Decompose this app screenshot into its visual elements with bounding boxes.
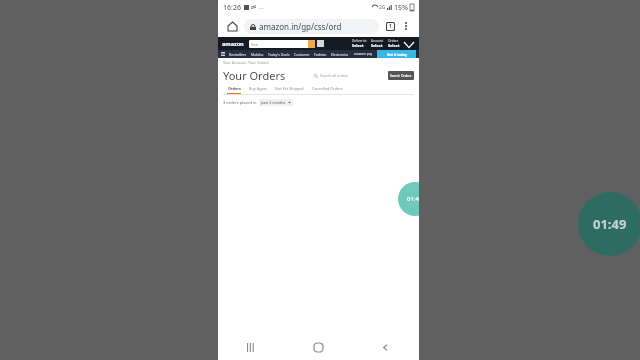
button[interactable]: Mobiles <box>249 52 266 57</box>
staticText: Mobiles <box>251 52 264 57</box>
staticText: Search Orders <box>390 74 412 78</box>
staticText: Not Yet Shipped <box>275 86 304 91</box>
button[interactable]: Customer <box>292 52 312 57</box>
staticText: Orders <box>228 86 241 91</box>
staticText: amazon pay <box>354 52 373 56</box>
button[interactable]: amazon pay <box>351 51 375 57</box>
staticText: Select <box>371 43 383 48</box>
staticText: Your Orders <box>223 68 286 83</box>
staticText: ··· <box>259 4 264 12</box>
staticText: 3 orders placed in <box>223 100 257 105</box>
button[interactable]: Search all orders <box>312 71 386 80</box>
button[interactable]: Buy Again <box>245 86 271 94</box>
button[interactable]: Back <box>352 334 419 360</box>
staticText: Bestsellers <box>229 52 247 57</box>
button[interactable]: Tabs <box>383 19 397 33</box>
staticText: Buy Again <box>249 86 267 91</box>
staticText: Cancelled Orders <box>312 86 343 91</box>
staticText: amazon <box>222 40 244 47</box>
staticText: Get it today <box>387 52 407 57</box>
button[interactable]: Account <box>369 39 386 48</box>
button[interactable]: past 3 months <box>259 99 293 106</box>
staticText: 01:49 <box>407 195 423 203</box>
button[interactable]: More options <box>399 19 413 33</box>
staticText: 01:49 <box>593 215 627 233</box>
staticText: Deliver to <box>352 39 367 43</box>
button[interactable]: Cart <box>404 40 414 48</box>
staticText: past 3 months <box>261 100 286 105</box>
staticText: 16:26 <box>223 3 241 13</box>
staticText: Search all orders <box>320 73 349 78</box>
button[interactable]: Amazon <box>221 39 245 48</box>
staticText: Orders <box>388 39 399 43</box>
button[interactable]: Bestsellers <box>227 52 249 57</box>
button[interactable]: Electronics <box>329 52 351 57</box>
staticText: Customer <box>294 52 310 57</box>
button[interactable]: Get it today <box>377 50 416 58</box>
button[interactable]: Orders <box>386 39 402 48</box>
staticText: Select <box>388 43 400 48</box>
button[interactable]: Deliver to <box>350 39 369 48</box>
button[interactable]: Fashion <box>312 52 329 57</box>
button[interactable]: Recents <box>218 334 285 360</box>
button[interactable]: amazon.in/gp/css/ord <box>244 19 379 34</box>
button[interactable]: Home <box>285 334 352 360</box>
button[interactable]: Not Yet Shipped <box>271 86 308 94</box>
staticText: 15% <box>394 3 408 13</box>
staticText: 1 <box>389 23 392 30</box>
staticText: Account <box>371 39 384 43</box>
button[interactable]: Sea <box>249 40 315 48</box>
staticText: 2G <box>379 4 386 11</box>
staticText: Fashion <box>314 52 327 57</box>
staticText: Electronics <box>331 52 349 57</box>
staticText: Sea <box>251 42 258 47</box>
button[interactable]: Search Orders <box>388 71 414 80</box>
button[interactable]: Home <box>224 18 240 34</box>
button[interactable]: Orders <box>223 86 245 94</box>
staticText: Select <box>352 43 364 48</box>
button[interactable]: Cancelled Orders <box>308 86 347 94</box>
staticText: Today's Deals <box>268 52 290 57</box>
staticText: Your Account › Your Orders <box>223 60 269 65</box>
button[interactable]: Today's Deals <box>266 52 292 57</box>
staticText: amazon.in/gp/css/ord <box>259 21 342 32</box>
